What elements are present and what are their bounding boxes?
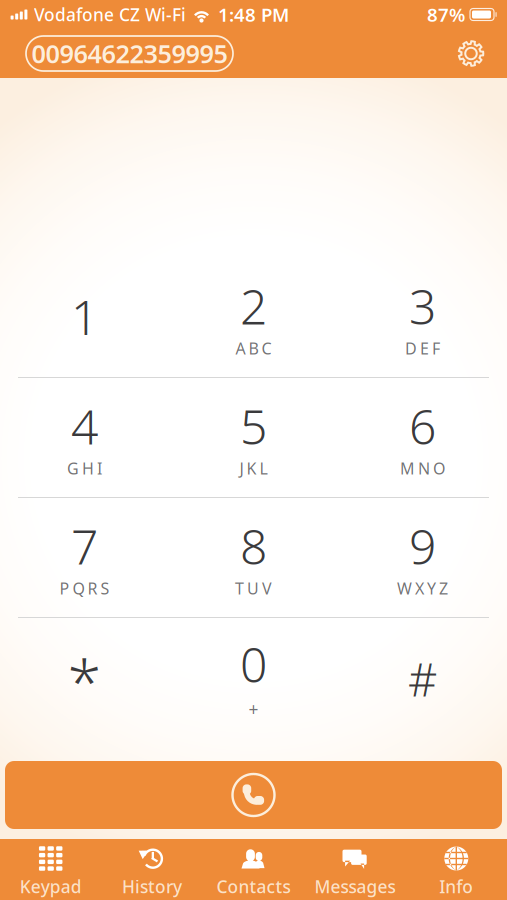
button[interactable]: 9 [338, 498, 507, 617]
staticText: G H I [67, 458, 102, 479]
button[interactable]: Contacts [203, 839, 304, 900]
staticText: Contacts [216, 875, 290, 898]
staticText: History [122, 875, 182, 898]
staticText: M N O [400, 458, 445, 479]
button[interactable]: Settings [448, 30, 494, 76]
staticText: W X Y Z [397, 578, 448, 599]
staticText: 2 [240, 274, 267, 338]
staticText: D E F [405, 338, 440, 359]
staticText: 5 [240, 394, 267, 458]
staticText: 3 [409, 274, 436, 338]
button[interactable]: History [101, 839, 203, 900]
button[interactable]: 8 [169, 498, 338, 617]
button[interactable]: Messages [304, 839, 406, 900]
staticText: # [408, 649, 437, 709]
staticText: P Q R S [59, 578, 109, 599]
button[interactable]: 3 [338, 258, 507, 377]
staticText: 4 [71, 394, 98, 458]
button[interactable]: 00964622359995 [26, 36, 233, 71]
button[interactable]: 4 [0, 378, 169, 497]
button[interactable]: 7 [0, 498, 169, 617]
staticText: 0 [240, 632, 267, 696]
staticText: 9 [409, 514, 436, 578]
staticText: T U V [235, 578, 272, 599]
staticText: 87% [427, 2, 465, 27]
button[interactable]: 2 [169, 258, 338, 377]
staticText: 8 [240, 514, 267, 578]
button[interactable]: 1 [0, 258, 169, 377]
staticText: Info [439, 875, 473, 898]
button[interactable]: 0 [169, 618, 338, 737]
button[interactable]: Call [5, 761, 502, 829]
staticText: 00964622359995 [31, 37, 227, 70]
staticText: 1:48 PM [218, 2, 289, 27]
staticText: 7 [71, 514, 98, 578]
staticText: Messages [314, 875, 395, 898]
staticText: 6 [409, 394, 436, 458]
button[interactable]: 6 [338, 378, 507, 497]
button[interactable]: * [0, 618, 169, 737]
staticText: A B C [235, 338, 271, 359]
staticText: Vodafone CZ Wi-Fi [34, 3, 186, 26]
staticText: + [248, 698, 258, 721]
button[interactable]: 5 [169, 378, 338, 497]
button[interactable]: # [338, 618, 507, 737]
staticText: * [67, 640, 101, 721]
staticText: Keypad [20, 875, 82, 898]
button[interactable]: Keypad [0, 839, 101, 900]
staticText: J K L [239, 458, 267, 479]
button[interactable]: Info [406, 839, 507, 900]
staticText: 1 [71, 285, 98, 348]
